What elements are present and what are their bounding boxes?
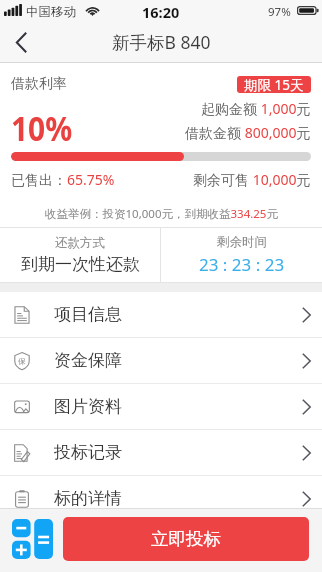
staticText: 中国移动 [26, 4, 76, 20]
staticText: 项目信息 [54, 304, 122, 325]
staticText: 16:20 [142, 2, 180, 22]
button[interactable]: Calculator [12, 519, 53, 559]
staticText: 资金保障 [54, 350, 122, 371]
staticText: 收益举例：投资10,000元，到期收益334.25元 [45, 206, 278, 222]
staticText: 起购金额 1,000元 [201, 99, 311, 118]
staticText: 已售出：65.75% [11, 170, 193, 189]
staticText: 标的详情 [54, 488, 122, 509]
button[interactable]: Back [0, 22, 42, 62]
button[interactable]: 标的详情 [0, 476, 322, 522]
staticText: 剩余可售 10,000元 [193, 170, 311, 189]
staticText: 到期一次性还款 [21, 254, 140, 275]
staticText: 还款方式 [55, 235, 105, 251]
button[interactable]: 投标记录 [0, 430, 322, 476]
staticText: 保 [18, 357, 26, 366]
button[interactable]: 立即投标 [63, 517, 309, 561]
staticText: 23 : 23 : 23 [199, 253, 285, 276]
staticText: 剩余时间 [217, 234, 267, 250]
staticText: 期限 15天 [244, 76, 304, 93]
staticText: 10% [11, 105, 73, 151]
staticText: 立即投标 [151, 528, 221, 550]
staticText: 借款金额 800,000元 [185, 123, 311, 142]
button[interactable]: 项目信息 [0, 292, 322, 338]
staticText: 图片资料 [54, 396, 122, 417]
staticText: 新手标B 840 [112, 30, 211, 54]
button[interactable]: 保 [0, 338, 322, 384]
staticText: 投标记录 [54, 442, 122, 463]
button[interactable]: 图片资料 [0, 384, 322, 430]
staticText: 借款利率 [11, 75, 67, 93]
staticText: 97% [268, 4, 291, 20]
